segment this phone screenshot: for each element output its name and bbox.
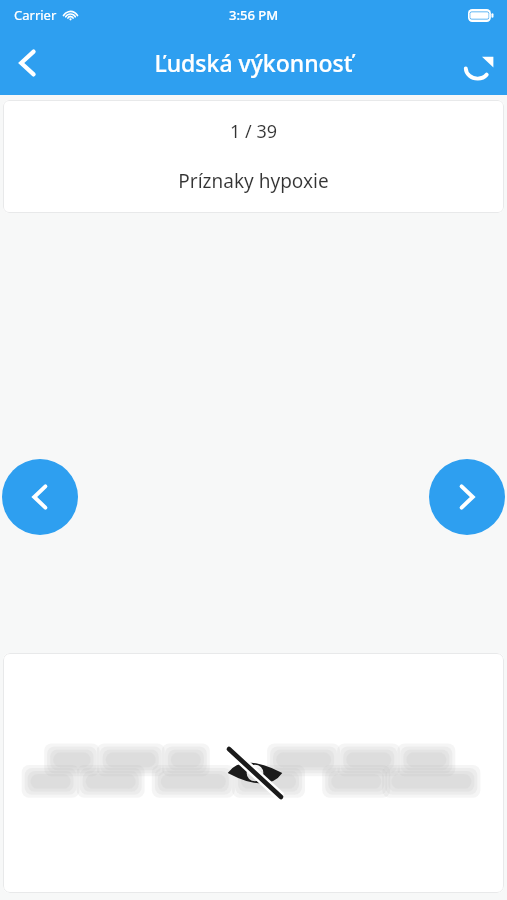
staticText: Príznaky hypoxie xyxy=(178,168,329,194)
button[interactable]: Redo xyxy=(451,35,507,91)
button[interactable]: 1 / 39 xyxy=(3,100,504,213)
staticText: 3:56 PM xyxy=(229,6,279,24)
button[interactable]: Show answer xyxy=(3,653,504,893)
button[interactable]: Show answer xyxy=(222,745,288,801)
staticText: Carrier xyxy=(14,6,57,24)
button[interactable]: Back xyxy=(0,35,56,91)
button[interactable]: Next xyxy=(429,459,505,535)
staticText: 1 / 39 xyxy=(230,119,277,144)
staticText: Ľudská výkonnosť xyxy=(154,47,353,78)
button[interactable]: Previous xyxy=(2,459,78,535)
